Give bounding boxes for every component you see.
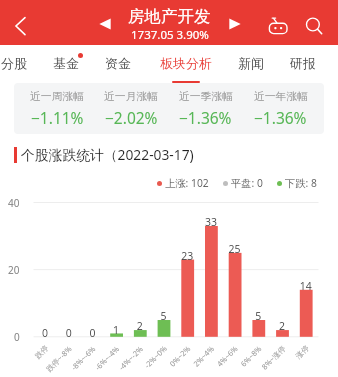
staticText: 基金 (53, 55, 79, 71)
staticText: 个股涨跌统计（2022-03-17) (21, 145, 194, 164)
staticText: 上涨: 102 (165, 176, 209, 190)
staticText: 房地产开发 (128, 6, 211, 27)
button[interactable]: 板块分析 (155, 45, 217, 83)
staticText: 近一月涨幅 (104, 90, 158, 104)
button[interactable]: 研报 (272, 45, 334, 83)
button[interactable]: 资金 (87, 45, 149, 83)
button[interactable]: Next sector (223, 12, 247, 36)
staticText: 近一季涨幅 (179, 90, 233, 104)
button[interactable]: 新闻 (220, 45, 282, 83)
staticText: 近一年涨幅 (254, 90, 308, 104)
staticText: 板块分析 (160, 55, 212, 71)
staticText: −1.11% (31, 107, 84, 128)
staticText: −1.36% (179, 107, 232, 128)
staticText: 下跌: 8 (285, 176, 317, 190)
button[interactable]: Back (6, 12, 34, 40)
staticText: 1737.05 3.90% (131, 27, 209, 43)
staticText: 资金 (105, 55, 131, 71)
staticText: −2.02% (105, 107, 158, 128)
staticText: 近一周涨幅 (30, 90, 84, 104)
button[interactable]: Previous sector (93, 12, 117, 36)
staticText: 研报 (290, 55, 316, 71)
button[interactable]: 分股 (0, 45, 45, 83)
staticText: 平盘: 0 (231, 176, 263, 190)
button[interactable]: Search (300, 11, 326, 37)
button[interactable]: AI assistant (264, 11, 290, 37)
staticText: 分股 (1, 55, 27, 71)
staticText: −1.36% (254, 107, 307, 128)
button[interactable]: 基金 (35, 45, 97, 83)
staticText: 新闻 (238, 55, 264, 71)
